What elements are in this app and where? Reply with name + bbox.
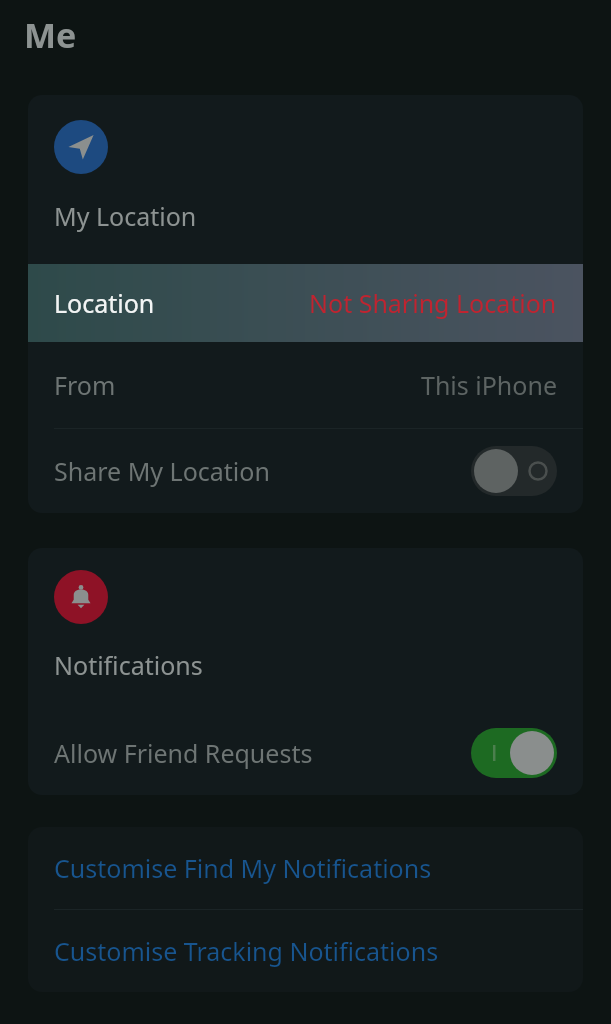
staticText: My Location (54, 199, 197, 233)
button[interactable]: From (28, 342, 583, 428)
staticText: This iPhone (421, 368, 557, 402)
button[interactable]: Share My Location off (471, 446, 557, 496)
other: My Location (54, 120, 108, 174)
staticText: Allow Friend Requests (54, 736, 313, 770)
staticText: Customise Find My Notifications (54, 851, 432, 885)
staticText: Customise Tracking Notifications (54, 934, 439, 968)
staticText: Not Sharing Location (309, 286, 557, 320)
staticText: Me (24, 12, 77, 58)
staticText: From (54, 368, 116, 402)
button[interactable]: Customise Tracking Notifications (28, 910, 583, 992)
other: Notifications (54, 570, 108, 624)
staticText: Notifications (54, 648, 203, 682)
button[interactable]: Allow Friend Requests on (471, 728, 557, 778)
staticText: Share My Location (54, 454, 270, 488)
button[interactable]: Location (28, 264, 583, 342)
button[interactable]: Customise Find My Notifications (28, 827, 583, 909)
button[interactable]: Share My Location (28, 429, 583, 513)
staticText: Location (54, 286, 155, 320)
button[interactable]: Allow Friend Requests (28, 711, 583, 795)
